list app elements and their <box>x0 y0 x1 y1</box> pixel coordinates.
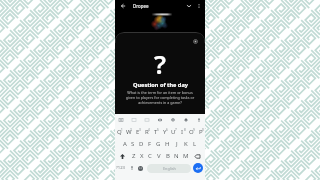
staticText: P <box>199 128 203 136</box>
staticText: B <box>166 152 170 160</box>
staticText: ?123 <box>116 165 126 171</box>
button[interactable]: More options <box>194 1 204 11</box>
button[interactable]: Q <box>115 126 124 138</box>
staticText: Q <box>117 128 122 136</box>
button[interactable]: Settings <box>153 114 166 126</box>
staticText: C <box>148 152 152 160</box>
staticText: T <box>154 128 158 136</box>
staticText: J <box>176 140 178 148</box>
button[interactable]: B <box>163 150 172 162</box>
staticText: 0 <box>202 128 204 132</box>
staticText: K <box>184 140 188 148</box>
staticText: 3 <box>139 128 141 132</box>
button[interactable]: U <box>169 126 178 138</box>
button[interactable]: Shift <box>115 150 130 162</box>
button[interactable]: W <box>124 126 133 138</box>
button[interactable]: K <box>181 138 190 150</box>
staticText: H <box>165 140 170 148</box>
button[interactable]: Info <box>191 37 200 46</box>
button[interactable]: F <box>145 138 154 150</box>
button[interactable]: Voice <box>192 114 205 126</box>
staticText: I <box>181 128 184 136</box>
staticText: D <box>139 140 144 148</box>
staticText: Question of the day <box>133 81 188 89</box>
button[interactable]: ?123 <box>115 162 127 174</box>
staticText: G <box>156 140 161 148</box>
button[interactable]: Back <box>118 1 127 10</box>
button[interactable]: J <box>172 138 181 150</box>
staticText: V <box>157 152 161 160</box>
staticText: X <box>140 152 144 160</box>
button[interactable]: V <box>154 150 163 162</box>
button[interactable]: Enter <box>193 163 203 173</box>
staticText: M <box>183 152 189 160</box>
staticText: N <box>174 152 179 160</box>
staticText: A <box>123 140 127 148</box>
button[interactable]: English <box>147 164 191 173</box>
staticText: R <box>145 128 149 136</box>
button[interactable]: N <box>172 150 181 162</box>
staticText: 7 <box>175 128 177 132</box>
button[interactable]: Z <box>130 150 138 162</box>
button[interactable]: X <box>138 150 146 162</box>
button[interactable]: C <box>146 150 154 162</box>
staticText: What is the term for an item or bonus gi… <box>121 90 199 105</box>
staticText: 9 <box>193 128 195 132</box>
button[interactable]: T <box>151 126 160 138</box>
button[interactable]: Sticker <box>166 114 179 126</box>
staticText: F <box>148 140 152 148</box>
staticText: L <box>193 140 197 148</box>
button[interactable]: Backspace <box>190 150 205 162</box>
button[interactable]: S <box>129 138 137 150</box>
button[interactable]: I <box>178 126 187 138</box>
staticText: 8 <box>184 128 186 132</box>
button[interactable]: Voice input <box>127 162 136 174</box>
staticText: ? <box>154 46 166 81</box>
button[interactable]: O <box>187 126 196 138</box>
button[interactable]: Clipboard <box>115 114 127 126</box>
button[interactable]: H <box>163 138 172 150</box>
staticText: U <box>171 128 176 136</box>
button[interactable]: Emoji <box>136 162 145 174</box>
staticText: S <box>131 140 135 148</box>
staticText: O <box>189 128 194 136</box>
button[interactable]: Search <box>179 114 192 126</box>
button[interactable]: D <box>137 138 145 150</box>
staticText: 1 <box>121 128 123 132</box>
button[interactable]: M <box>181 150 190 162</box>
button[interactable]: Theme <box>140 114 153 126</box>
staticText: Y <box>163 128 167 136</box>
button[interactable]: E <box>133 126 142 138</box>
button[interactable]: P <box>196 126 205 138</box>
button[interactable]: Y <box>160 126 169 138</box>
staticText: 6 <box>166 128 168 132</box>
staticText: E <box>136 128 140 136</box>
staticText: Dropee <box>133 3 149 9</box>
staticText: 4 <box>148 128 150 132</box>
button[interactable]: Translate <box>127 114 140 126</box>
button[interactable]: G <box>154 138 163 150</box>
staticText: English <box>163 166 176 171</box>
staticText: 5 <box>157 128 159 132</box>
staticText: Z <box>132 152 136 160</box>
button[interactable]: R <box>142 126 151 138</box>
staticText: 2 <box>130 128 132 132</box>
button[interactable]: Expand <box>184 1 194 11</box>
button[interactable]: L <box>190 138 199 150</box>
button[interactable]: A <box>121 138 129 150</box>
staticText: W <box>126 128 132 136</box>
